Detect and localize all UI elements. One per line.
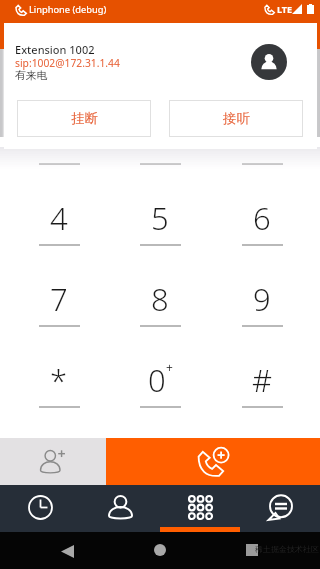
button[interactable]: 7 [25,263,93,333]
staticText: Extension 1002 [15,42,95,57]
staticText: 4 [50,197,68,239]
button[interactable]: 6 [228,182,296,252]
button[interactable]: 0 [126,344,194,414]
staticText: 有来电 [15,69,48,83]
button[interactable]: 挂断 [17,100,151,137]
button[interactable]: Recents [239,537,265,563]
button[interactable]: 2 [126,101,194,171]
button[interactable]: History [0,485,80,532]
staticText: 挂断 [71,110,98,127]
button[interactable]: 9 [228,263,296,333]
button[interactable]: 接听 [169,100,303,137]
staticText: * [50,359,68,401]
button[interactable]: 4 [25,182,93,252]
staticText: 接听 [223,110,250,127]
button[interactable]: 5 [126,182,194,252]
staticText: 3 [253,116,271,158]
button[interactable]: Home [147,537,173,563]
staticText: 5 [151,197,169,239]
button[interactable]: Back [54,538,80,564]
button[interactable]: Add contact [0,438,106,485]
staticText: 6 [253,197,271,239]
staticText: # [252,359,273,401]
staticText: LTE [277,3,293,15]
button[interactable]: Contacts [80,485,160,532]
button[interactable]: 3 [228,101,296,171]
staticText: 9 [253,278,271,320]
button[interactable]: 8 [126,263,194,333]
button[interactable]: Chat [240,485,320,532]
staticText: + [166,359,173,375]
button[interactable]: * [25,344,93,414]
staticText: 1 [50,116,68,158]
button[interactable]: Dialer [160,485,240,532]
staticText: 8 [151,278,169,320]
staticText: 2 [151,116,169,158]
staticText: 7 [50,278,68,320]
button[interactable]: Start call [106,438,320,485]
button[interactable]: Caller avatar [251,44,287,80]
staticText: sip:1002@172.31.1.44 [15,56,120,70]
staticText: 稀土掘金技术社区 [255,544,319,554]
staticText: Linphone (debug) [29,3,107,16]
button[interactable]: # [228,344,296,414]
button[interactable]: 1 [25,101,93,171]
staticText: 0 [148,359,166,401]
